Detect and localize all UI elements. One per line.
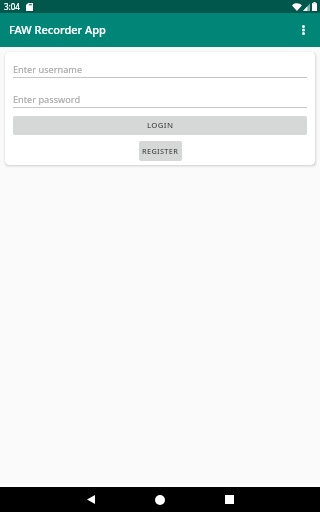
button[interactable]: LOGIN <box>13 116 307 135</box>
staticText: REGISTER <box>142 146 179 156</box>
button[interactable]: Enter password <box>13 91 307 108</box>
staticText: Enter password <box>13 93 81 106</box>
button[interactable]: Recents <box>212 487 246 512</box>
button[interactable]: More options <box>286 13 320 47</box>
button[interactable]: Enter username <box>13 61 307 78</box>
button[interactable]: Back <box>74 487 108 512</box>
staticText: Enter username <box>13 63 83 76</box>
staticText: 3:04 <box>4 1 20 12</box>
button[interactable]: Home <box>143 487 177 512</box>
button[interactable]: REGISTER <box>139 141 182 161</box>
staticText: LOGIN <box>147 120 174 131</box>
staticText: FAW Recorder App <box>9 22 106 37</box>
